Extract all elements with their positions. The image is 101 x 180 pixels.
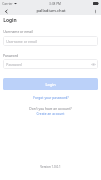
staticText: Forgot your password? [33, 95, 69, 99]
staticText: palladium.chat [36, 8, 66, 14]
staticText: Version 1.0.0.1 [40, 165, 61, 169]
staticText: Carrier [2, 2, 13, 6]
button[interactable]: More options [89, 7, 101, 15]
button[interactable]: Forgot your password? [3, 95, 98, 99]
staticText: 3:38 PM [49, 2, 61, 6]
button[interactable]: Username or email [3, 36, 98, 46]
other: Show password [91, 62, 96, 67]
staticText: Password [6, 62, 22, 67]
staticText: Password [3, 53, 18, 57]
button[interactable]: Login [3, 78, 98, 90]
button[interactable]: Back [0, 7, 12, 15]
staticText: Don't you have an account? [29, 106, 72, 110]
button[interactable]: Create an account [3, 111, 98, 115]
staticText: Login [45, 82, 56, 87]
staticText: Login [3, 17, 17, 24]
staticText: Create an account [36, 111, 65, 115]
button[interactable]: Password [3, 59, 98, 69]
staticText: Username or email [3, 29, 33, 33]
staticText: Username or email [6, 39, 37, 44]
